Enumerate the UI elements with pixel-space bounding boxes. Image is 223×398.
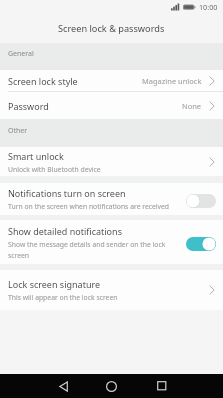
staticText: General — [8, 49, 34, 59]
staticText: 10:00 — [199, 2, 218, 12]
button[interactable]: Password — [0, 92, 223, 119]
staticText: Other — [8, 126, 28, 136]
button[interactable]: Show detailed notifications — [0, 220, 223, 264]
staticText: Screen lock style — [8, 75, 78, 87]
staticText: This will appear on the lock screen — [8, 293, 118, 302]
staticText: Unlock with Bluetooth device — [8, 165, 101, 174]
staticText: Show the message details and sender on t… — [8, 240, 166, 249]
button[interactable] — [186, 194, 216, 208]
button[interactable]: Lock screen signature — [0, 270, 223, 310]
staticText: Screen lock & passwords — [58, 22, 165, 35]
staticText: None — [182, 101, 202, 111]
staticText: Magazine unlock — [142, 76, 202, 86]
staticText: Lock screen signature — [8, 278, 101, 290]
button[interactable] — [156, 380, 168, 392]
button[interactable] — [57, 380, 69, 392]
staticText: screen — [8, 251, 30, 260]
button[interactable] — [186, 237, 216, 251]
button[interactable]: Screen lock style — [0, 70, 223, 91]
button[interactable]: Smart unlock — [0, 147, 223, 176]
button[interactable] — [105, 380, 117, 392]
staticText: Notifications turn on screen — [8, 187, 126, 199]
button[interactable]: Notifications turn on screen — [0, 183, 223, 215]
staticText: Turn on the screen when notifications ar… — [8, 202, 170, 211]
staticText: Show detailed notifications — [8, 225, 122, 237]
staticText: Smart unlock — [8, 150, 64, 162]
staticText: Password — [8, 100, 49, 112]
